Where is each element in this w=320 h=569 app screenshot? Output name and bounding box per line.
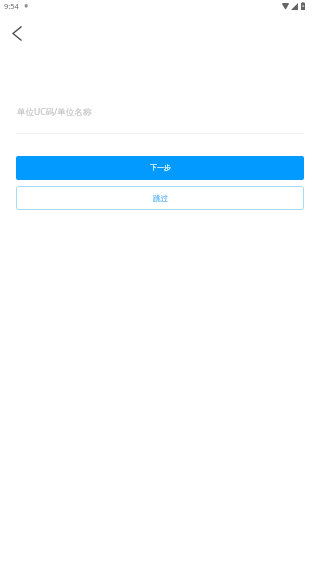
staticText: 下一步	[150, 163, 171, 172]
staticText: 9:54	[4, 1, 19, 11]
staticText: 单位UC码/单位名称	[17, 106, 92, 118]
button[interactable]: 下一步	[16, 156, 304, 180]
button[interactable]: Back	[4, 20, 30, 46]
button[interactable]: 跳过	[16, 186, 304, 210]
staticText: 跳过	[153, 194, 168, 203]
button[interactable]: 单位UC码/单位名称	[16, 100, 304, 134]
